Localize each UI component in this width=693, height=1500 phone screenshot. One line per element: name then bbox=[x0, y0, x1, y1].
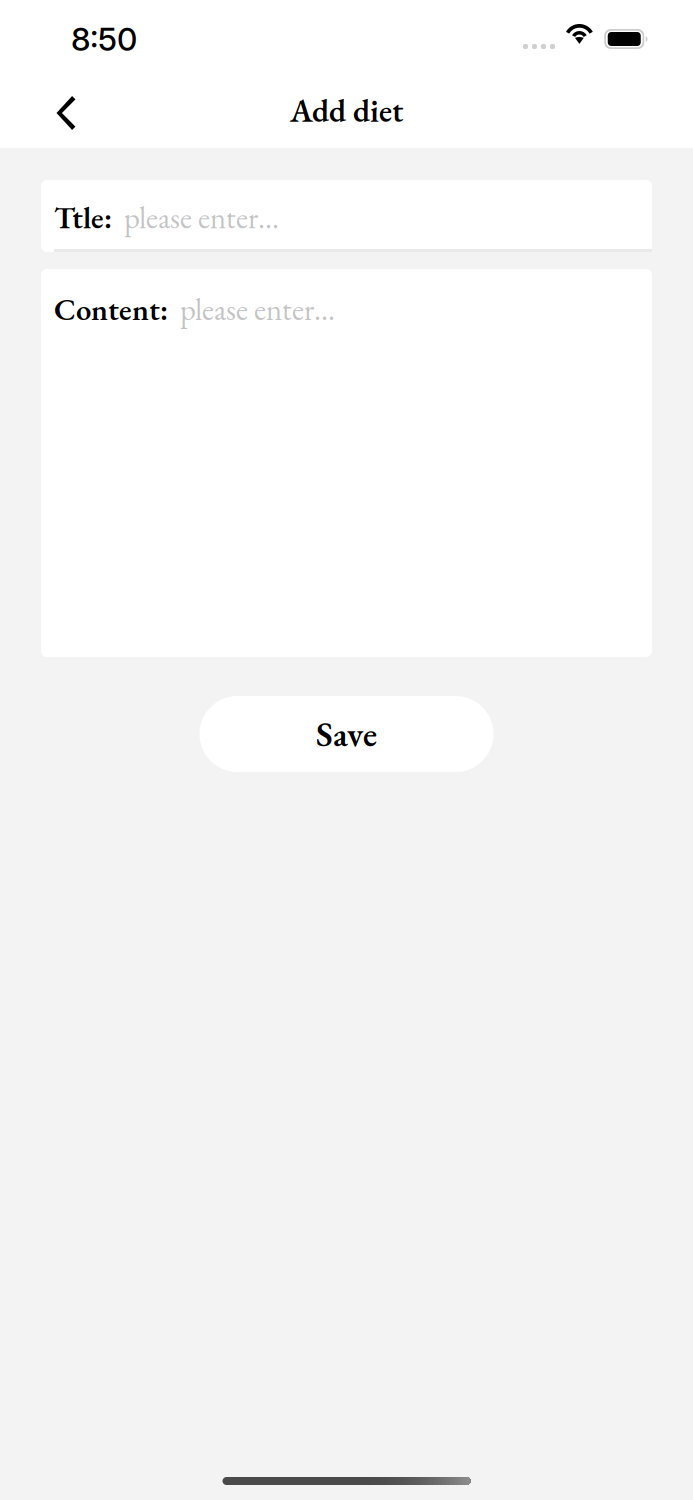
staticText: Ttle: bbox=[54, 197, 112, 237]
button[interactable]: Save bbox=[199, 696, 493, 772]
staticText: Content: bbox=[54, 289, 168, 329]
staticText: please enter... bbox=[180, 289, 335, 329]
staticText: please enter... bbox=[124, 197, 279, 237]
staticText: Save bbox=[316, 711, 377, 757]
staticText: 8:50 bbox=[71, 20, 137, 58]
button[interactable]: Content: bbox=[41, 269, 652, 657]
staticText: Add diet bbox=[290, 90, 403, 131]
button[interactable]: Back bbox=[34, 81, 98, 145]
button[interactable]: Ttle: bbox=[41, 180, 652, 252]
